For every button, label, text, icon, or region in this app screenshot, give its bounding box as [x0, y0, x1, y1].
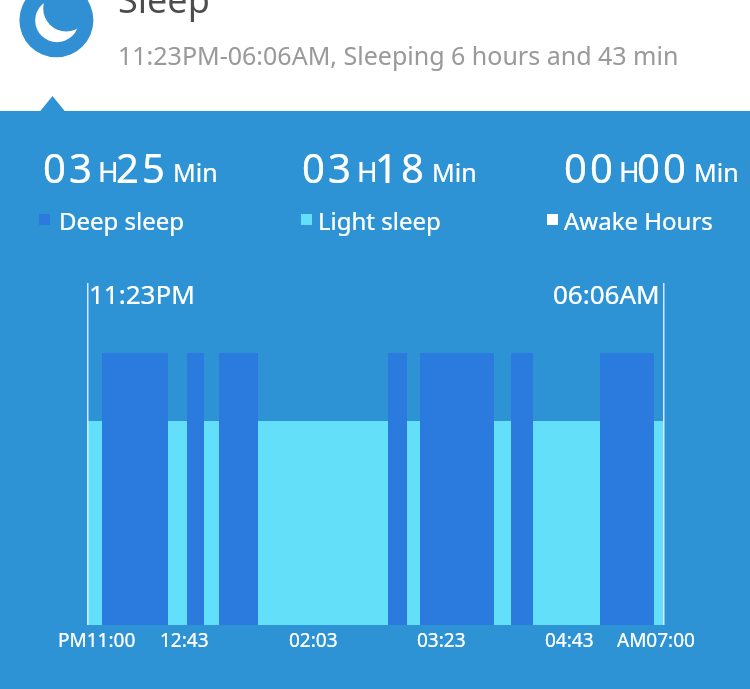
staticText: 04:43: [545, 627, 594, 653]
staticText: 12:43: [160, 627, 209, 653]
staticText: 11:23PM: [89, 276, 195, 311]
staticText: Min: [694, 155, 739, 189]
staticText: Deep sleep: [59, 204, 185, 237]
staticText: Sleep: [118, 0, 210, 24]
staticText: Min: [173, 155, 218, 189]
staticText: 03:23: [417, 627, 466, 653]
staticText: 03: [43, 140, 95, 194]
staticText: 03: [302, 140, 354, 194]
button[interactable]: [19, 0, 94, 58]
staticText: PM11:00: [58, 627, 136, 653]
staticText: H: [98, 152, 119, 190]
staticText: 25: [116, 140, 168, 194]
staticText: H: [619, 152, 640, 190]
staticText: 11:23PM-06:06AM, Sleeping 6 hours and 43…: [118, 38, 679, 72]
staticText: AM07:00: [617, 627, 695, 653]
staticText: 00: [564, 140, 616, 194]
staticText: 18: [375, 140, 427, 194]
staticText: 00: [637, 140, 689, 194]
staticText: 02:03: [289, 627, 338, 653]
staticText: H: [357, 152, 378, 190]
staticText: Awake Hours: [564, 204, 713, 237]
staticText: Light sleep: [318, 204, 441, 237]
staticText: 06:06AM: [553, 276, 660, 311]
staticText: Min: [432, 155, 477, 189]
